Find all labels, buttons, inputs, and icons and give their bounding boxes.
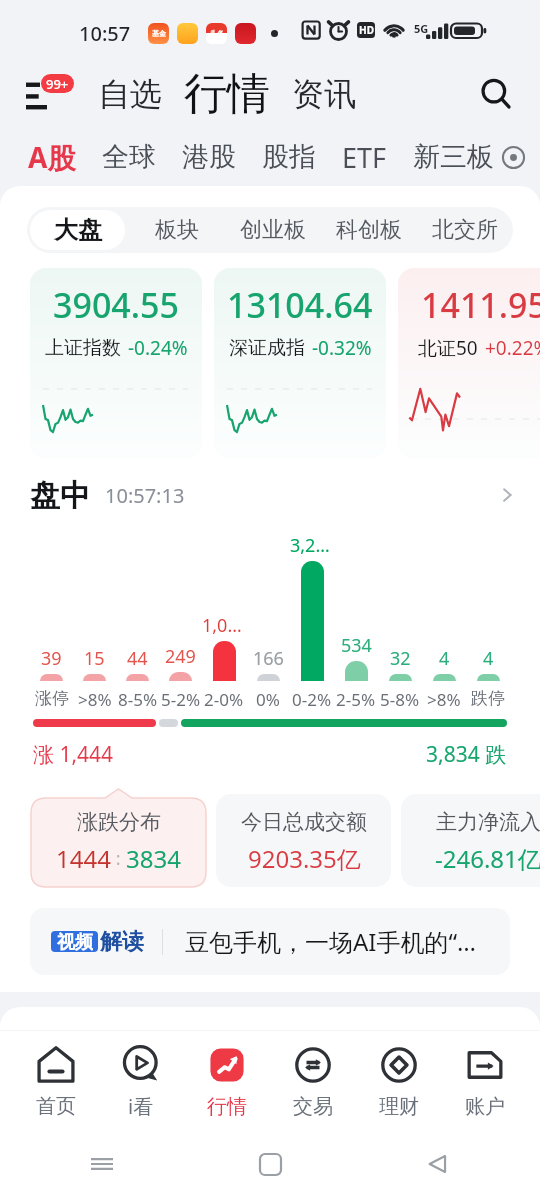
staticText: 39 [41, 646, 62, 671]
button[interactable]: 全球 [100, 133, 158, 181]
staticText: 行情 [207, 1094, 247, 1119]
staticText: 大盘 [54, 215, 102, 245]
button[interactable]: 北交所 [417, 207, 513, 253]
staticText: 解读 [100, 928, 144, 956]
staticText: 头条 [210, 29, 224, 38]
button[interactable]: 3904.55 [30, 268, 202, 459]
button[interactable]: Recents [80, 1142, 124, 1186]
staticText: 跌停 [471, 688, 505, 709]
staticText: 5-8% [380, 688, 420, 711]
staticText: 249 [165, 644, 196, 669]
button[interactable]: Home [248, 1142, 292, 1186]
staticText: 交易 [293, 1094, 333, 1119]
button[interactable]: 新三板 [411, 133, 496, 181]
staticText: 3,834 跌 [426, 740, 507, 769]
staticText: 创业板 [240, 216, 306, 244]
button[interactable]: A股 [26, 131, 78, 183]
staticText: 2-0% [204, 688, 244, 711]
button[interactable]: 创业板 [225, 207, 321, 253]
staticText: 资讯 [292, 74, 356, 114]
staticText: 视频 [57, 931, 93, 952]
staticText: 1411.95 [421, 282, 540, 328]
staticText: 9203.35亿 [248, 842, 361, 875]
button[interactable]: 港股 [180, 133, 238, 181]
button[interactable]: 行情 [184, 1040, 270, 1126]
staticText: 5G [414, 21, 429, 36]
staticText: -0.24% [128, 335, 188, 361]
button[interactable]: 主力净流入 [401, 789, 540, 887]
staticText: 534 [341, 633, 372, 658]
staticText: +0.22% [485, 335, 540, 361]
staticText: : [111, 846, 126, 871]
button[interactable]: 今日总成交额 [216, 789, 391, 887]
staticText: 北交所 [432, 216, 498, 244]
staticText: 基金 [152, 29, 166, 38]
staticText: -0.32% [312, 335, 372, 361]
staticText: 豆包手机，一场AI手机的“… [185, 925, 477, 958]
button[interactable]: Settings [496, 140, 530, 174]
staticText: 4 [483, 646, 494, 671]
staticText: 全球 [102, 140, 156, 174]
button[interactable]: Search [474, 72, 518, 116]
staticText: 1,097 [202, 613, 246, 638]
button[interactable]: 涨跌分布 [31, 789, 206, 887]
button[interactable]: 科创板 [321, 207, 417, 253]
button[interactable]: 股指 [260, 133, 318, 181]
staticText: 自选 [98, 74, 162, 114]
button[interactable]: 1411.95 [398, 268, 540, 459]
staticText: ETF [342, 139, 387, 176]
staticText: 10:57:13 [105, 482, 185, 509]
staticText: 上证指数 [45, 336, 121, 360]
button[interactable]: 13104.64 [214, 268, 386, 459]
staticText: 首页 [36, 1094, 76, 1119]
staticText: 涨停 [35, 688, 69, 709]
button[interactable]: 板块 [128, 207, 225, 253]
button[interactable]: 交易 [270, 1040, 356, 1126]
staticText: >8% [78, 688, 112, 711]
staticText: 行情 [184, 67, 270, 121]
staticText: >8% [427, 688, 461, 711]
button[interactable]: i看 [98, 1040, 184, 1126]
staticText: -246.81亿 [435, 842, 540, 875]
staticText: 今日总成交额 [241, 809, 367, 835]
staticText: 账户 [465, 1094, 505, 1119]
button[interactable]: 首页 [13, 1040, 98, 1126]
staticText: HD [359, 23, 374, 37]
button[interactable]: 账户 [442, 1040, 528, 1126]
staticText: 主力净流入 [436, 809, 540, 835]
staticText: 理财 [379, 1094, 419, 1119]
staticText: A股 [28, 138, 76, 176]
button[interactable]: Menu [22, 72, 78, 116]
staticText: 4 [439, 646, 450, 671]
button[interactable]: 资讯 [290, 68, 358, 120]
staticText: 板块 [155, 216, 199, 244]
button[interactable]: 理财 [356, 1040, 442, 1126]
button[interactable]: 大盘 [30, 210, 125, 250]
button[interactable]: 行情 [182, 65, 272, 123]
staticText: 涨 1,444 [33, 740, 114, 769]
staticText: 涨跌分布 [77, 809, 161, 835]
staticText: 10:57 [79, 20, 131, 47]
staticText: 13104.64 [227, 282, 373, 328]
staticText: 科创板 [336, 216, 402, 244]
staticText: 5-2% [161, 688, 201, 711]
staticText: 8-5% [118, 688, 158, 711]
staticText: 0% [256, 688, 280, 711]
staticText: 深证成指 [229, 336, 305, 360]
staticText: 44 [127, 646, 148, 671]
staticText: 盘中 [30, 477, 90, 513]
staticText: 股指 [262, 140, 316, 174]
staticText: i看 [128, 1093, 154, 1120]
staticText: 32 [390, 646, 411, 671]
button[interactable]: 盘中 [30, 477, 516, 513]
button[interactable]: 自选 [96, 68, 164, 120]
button[interactable]: Back [416, 1142, 460, 1186]
button[interactable]: ETF [340, 132, 389, 183]
staticText: 3904.55 [53, 282, 179, 328]
staticText: 3834 [126, 842, 181, 875]
staticText: 0-2% [292, 688, 332, 711]
staticText: 99+ [46, 75, 69, 93]
button[interactable]: 视频 [30, 908, 510, 975]
staticText: 2-5% [336, 688, 376, 711]
staticText: 北证50 [418, 335, 478, 361]
